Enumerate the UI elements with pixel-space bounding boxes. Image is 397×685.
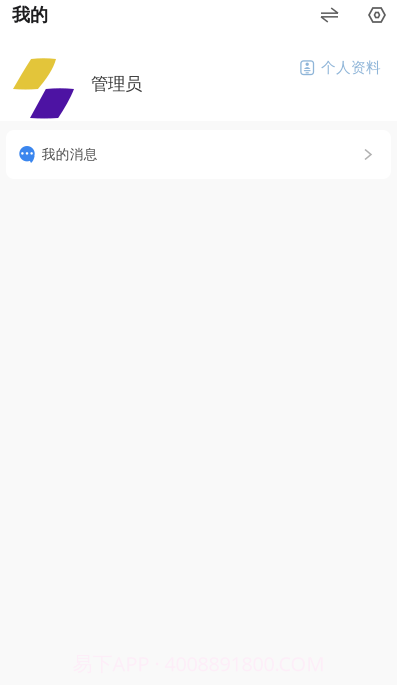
staticText: 个人资料 xyxy=(321,58,381,77)
staticText: 易下APP · 4008891800.COM xyxy=(72,650,324,677)
staticText: 我的消息 xyxy=(42,146,98,163)
staticText: 我的 xyxy=(12,4,48,26)
button[interactable]: Settings xyxy=(357,0,397,31)
button[interactable]: 我的消息 xyxy=(6,130,391,179)
button[interactable]: 个人资料 xyxy=(299,53,383,82)
staticText: 管理员 xyxy=(91,73,142,95)
button[interactable]: Switch account xyxy=(309,0,357,31)
